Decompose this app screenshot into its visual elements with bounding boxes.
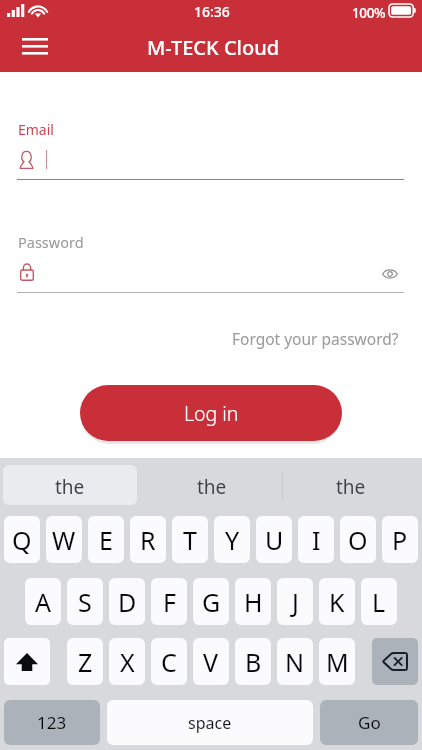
staticText: space (188, 712, 232, 734)
staticText: L (372, 585, 386, 619)
button[interactable]: the (141, 465, 282, 505)
button[interactable]: Log in (80, 385, 342, 441)
staticText: O (348, 523, 368, 557)
staticText: 16:36 (194, 2, 230, 21)
staticText: Email (18, 120, 54, 139)
button[interactable]: Menu (10, 26, 60, 76)
staticText: 123 (37, 711, 67, 734)
button[interactable]: K (319, 578, 355, 625)
button[interactable]: the (3, 465, 137, 505)
button[interactable]: H (235, 578, 271, 625)
staticText: E (99, 523, 113, 557)
button[interactable]: W (46, 516, 82, 563)
staticText: the (336, 474, 366, 500)
button[interactable]: 123 (4, 700, 100, 745)
button[interactable]: space (107, 700, 313, 745)
staticText: M-TECK Cloud (147, 34, 280, 61)
button[interactable]: Q (4, 516, 40, 563)
button[interactable]: J (277, 578, 313, 625)
button[interactable]: T (172, 516, 208, 563)
staticText: S (78, 585, 92, 619)
button[interactable]: V (193, 638, 229, 685)
staticText: R (140, 523, 156, 557)
button[interactable]: I (298, 516, 334, 563)
button[interactable]: Forgot your password? (224, 320, 407, 357)
staticText: J (292, 585, 299, 619)
button[interactable]: G (193, 578, 229, 625)
staticText: 100% (352, 4, 386, 22)
button[interactable]: M (319, 638, 355, 685)
button[interactable]: Z (67, 638, 103, 685)
button[interactable]: C (151, 638, 187, 685)
button[interactable]: O (340, 516, 376, 563)
button[interactable]: Backspace (372, 638, 418, 685)
staticText: M (326, 645, 349, 679)
button[interactable]: the (283, 465, 419, 505)
staticText: A (35, 585, 51, 619)
staticText: F (163, 585, 176, 619)
staticText: V (203, 645, 219, 679)
staticText: G (202, 585, 221, 619)
staticText: N (285, 645, 305, 679)
staticText: Z (78, 645, 93, 679)
button[interactable]: N (277, 638, 313, 685)
button[interactable]: E (88, 516, 124, 563)
staticText: D (118, 585, 137, 619)
staticText: I (312, 523, 321, 557)
staticText: W (52, 523, 76, 557)
staticText: the (55, 474, 85, 500)
staticText: X (120, 645, 135, 679)
button[interactable]: B (235, 638, 271, 685)
button[interactable]: P (382, 516, 418, 563)
staticText: U (265, 523, 284, 557)
staticText: Q (12, 523, 32, 557)
staticText: Password (18, 232, 84, 252)
button[interactable]: D (109, 578, 145, 625)
staticText: Go (358, 711, 381, 734)
button[interactable]: Show password (375, 259, 405, 289)
button[interactable]: R (130, 516, 166, 563)
button[interactable]: S (67, 578, 103, 625)
button[interactable]: U (256, 516, 292, 563)
staticText: B (245, 645, 262, 679)
staticText: T (183, 523, 197, 557)
button[interactable]: A (25, 578, 61, 625)
button[interactable]: Go (320, 700, 418, 745)
staticText: C (161, 645, 177, 679)
staticText: Log in (184, 400, 239, 427)
staticText: Forgot your password? (232, 328, 399, 349)
button[interactable]: L (361, 578, 397, 625)
staticText: Y (225, 523, 240, 557)
staticText: the (197, 474, 227, 500)
staticText: H (244, 585, 263, 619)
button[interactable]: F (151, 578, 187, 625)
button[interactable]: Y (214, 516, 250, 563)
button[interactable]: Shift (4, 638, 50, 685)
button[interactable]: X (109, 638, 145, 685)
staticText: P (392, 523, 408, 557)
staticText: K (329, 585, 345, 619)
